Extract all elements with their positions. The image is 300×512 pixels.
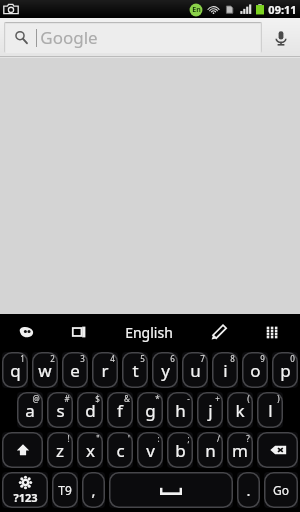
staticText: g <box>145 399 156 422</box>
staticText: a <box>25 399 35 422</box>
staticText: h <box>175 399 186 422</box>
staticText: l <box>268 399 273 422</box>
button[interactable]: g <box>137 392 163 428</box>
button[interactable]: r <box>92 352 118 388</box>
button[interactable]: Backspace <box>257 432 298 468</box>
staticText: , <box>91 480 96 500</box>
staticText: 9 <box>260 353 265 364</box>
staticText: c <box>116 439 125 462</box>
button[interactable]: Emoticons <box>0 314 53 350</box>
button[interactable]: i <box>212 352 238 388</box>
staticText: . <box>246 480 251 500</box>
staticText: English <box>125 323 173 342</box>
staticText: 8 <box>230 353 235 364</box>
button[interactable]: k <box>227 392 253 428</box>
staticText: x <box>86 439 95 462</box>
button[interactable]: m <box>227 432 253 468</box>
button[interactable]: c <box>107 432 133 468</box>
staticText: Go <box>273 482 289 498</box>
button[interactable]: p <box>272 352 298 388</box>
staticText: m <box>232 439 248 462</box>
button[interactable]: h <box>167 392 193 428</box>
staticText: e <box>70 359 80 382</box>
staticText: ? <box>246 433 250 444</box>
staticText: * <box>155 393 160 404</box>
staticText: u <box>190 359 201 382</box>
staticText: 09:11 <box>268 2 297 17</box>
staticText: s <box>56 399 65 422</box>
staticText: 5 <box>140 353 145 364</box>
button[interactable]: f <box>107 392 133 428</box>
staticText: 4 <box>110 353 115 364</box>
staticText: f <box>117 399 123 422</box>
button[interactable]: e <box>62 352 88 388</box>
staticText: w <box>38 359 52 382</box>
button[interactable]: o <box>242 352 268 388</box>
button[interactable]: Clipboard <box>53 314 106 350</box>
button[interactable]: z <box>47 432 73 468</box>
button[interactable]: y <box>152 352 178 388</box>
staticText: " <box>96 433 100 444</box>
staticText: ?123 <box>13 490 38 505</box>
staticText: + <box>215 393 220 404</box>
staticText: d <box>85 399 96 422</box>
button[interactable]: d <box>77 392 103 428</box>
button[interactable]: l <box>257 392 283 428</box>
staticText: q <box>10 359 21 382</box>
staticText: i <box>223 359 228 382</box>
staticText: o <box>250 359 261 382</box>
button[interactable]: j <box>197 392 223 428</box>
button[interactable]: n <box>197 432 223 468</box>
staticText: & <box>124 393 130 404</box>
button[interactable]: Go <box>264 472 298 508</box>
staticText: ' <box>128 433 130 444</box>
staticText: ) <box>277 393 280 404</box>
staticText: j <box>208 399 213 422</box>
staticText: 3 <box>80 353 85 364</box>
staticText: v <box>146 439 155 462</box>
button[interactable]: Voice search <box>262 18 300 58</box>
staticText: 6 <box>170 353 175 364</box>
staticText: $ <box>95 393 100 404</box>
button[interactable]: English <box>106 314 192 350</box>
staticText: b <box>175 439 186 462</box>
staticText: @ <box>32 393 40 404</box>
staticText: 0 <box>290 353 295 364</box>
staticText: ! <box>67 433 70 444</box>
staticText: p <box>280 359 291 382</box>
staticText: # <box>64 393 70 404</box>
button[interactable]: t <box>122 352 148 388</box>
button[interactable]: . <box>237 472 260 508</box>
staticText: : <box>157 433 160 444</box>
button[interactable]: T9 <box>52 472 78 508</box>
staticText: k <box>235 399 245 422</box>
staticText: t <box>132 359 139 382</box>
staticText: Google <box>40 26 98 49</box>
staticText: n <box>205 439 216 462</box>
button[interactable]: Shift <box>2 432 43 468</box>
button[interactable]: , <box>82 472 105 508</box>
button[interactable]: Number pad <box>246 314 300 350</box>
staticText: ; <box>187 433 190 444</box>
button[interactable]: Space <box>109 472 233 508</box>
staticText: - <box>187 393 190 404</box>
button[interactable]: x <box>77 432 103 468</box>
button[interactable]: w <box>32 352 58 388</box>
button[interactable]: Handwriting <box>192 314 246 350</box>
button[interactable]: Symbols and settings <box>2 472 48 508</box>
staticText: En <box>192 5 201 15</box>
button[interactable]: Google <box>4 22 262 53</box>
staticText: 2 <box>50 353 55 364</box>
staticText: T9 <box>58 482 72 498</box>
button[interactable]: a <box>17 392 43 428</box>
staticText: r <box>101 359 109 382</box>
button[interactable]: s <box>47 392 73 428</box>
button[interactable]: b <box>167 432 193 468</box>
button[interactable]: v <box>137 432 163 468</box>
staticText: y <box>161 359 170 382</box>
staticText: / <box>217 433 220 444</box>
staticText: 1 <box>20 353 25 364</box>
staticText: 7 <box>200 353 205 364</box>
button[interactable]: q <box>2 352 28 388</box>
button[interactable]: u <box>182 352 208 388</box>
